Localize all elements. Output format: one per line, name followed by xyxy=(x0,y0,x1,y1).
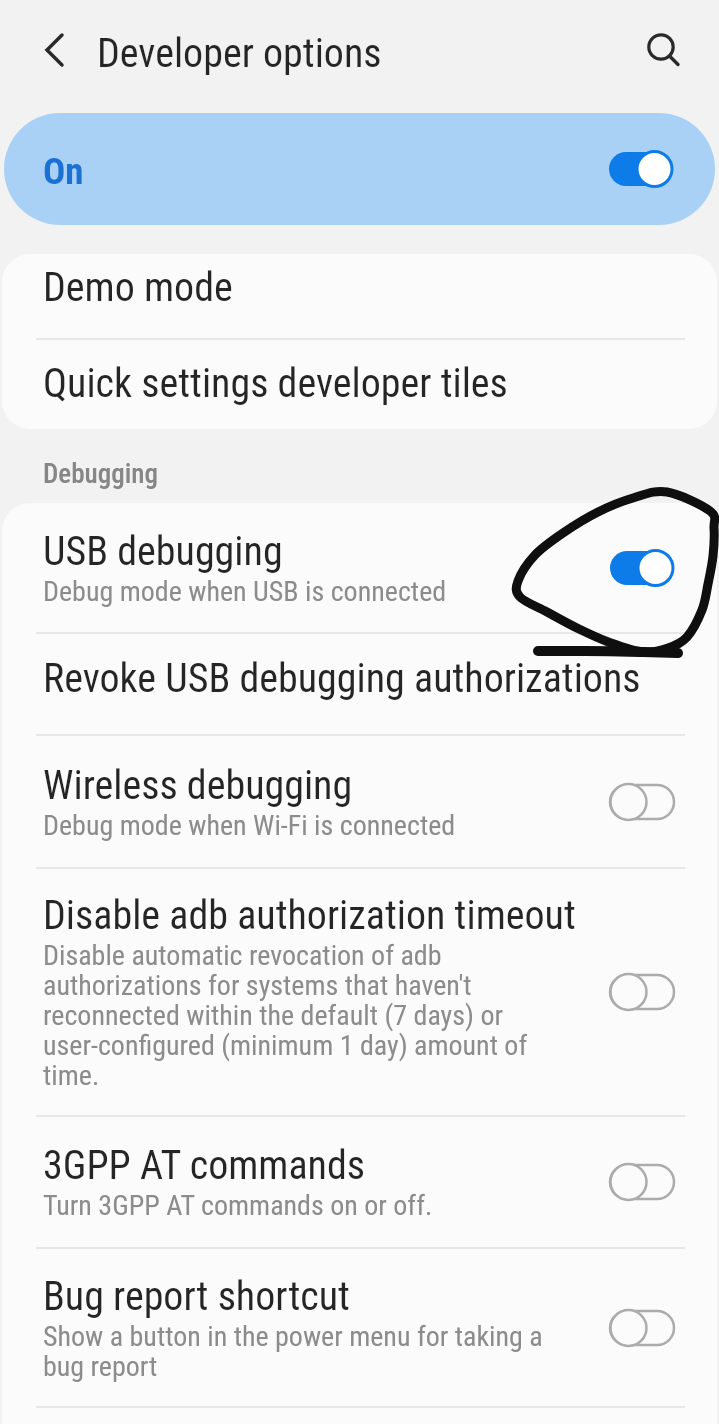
staticText: Quick settings developer tiles xyxy=(43,360,508,407)
button[interactable] xyxy=(0,0,90,97)
staticText: Debugging xyxy=(43,458,158,490)
staticText: Developer options xyxy=(97,30,382,77)
button[interactable]: Bug report shortcut xyxy=(2,1249,717,1406)
staticText: Wireless debugging xyxy=(43,762,353,809)
button[interactable] xyxy=(639,0,719,97)
staticText: Turn 3GPP AT commands on or off. xyxy=(43,1189,433,1222)
staticText: USB debugging xyxy=(43,528,283,575)
button[interactable]: 3GPP AT commands xyxy=(2,1117,717,1247)
button[interactable]: Quick settings developer tiles xyxy=(2,340,717,429)
staticText: On xyxy=(43,150,84,193)
button[interactable] xyxy=(608,149,674,189)
staticText: Disable automatic revocation of adb auth… xyxy=(43,939,528,1092)
staticText: Debug mode when Wi-Fi is connected xyxy=(43,809,456,842)
button[interactable]: Revoke USB debugging authorizations xyxy=(2,634,717,734)
button[interactable] xyxy=(609,972,675,1012)
button[interactable] xyxy=(609,1162,675,1202)
staticText: Demo mode xyxy=(43,264,233,311)
button[interactable]: Wireless debugging xyxy=(2,736,717,867)
button[interactable]: Disable adb authorization timeout xyxy=(2,869,717,1115)
button[interactable]: Demo mode xyxy=(2,254,717,338)
button[interactable] xyxy=(609,782,675,822)
button[interactable]: USB debugging xyxy=(2,503,717,632)
staticText: Disable adb authorization timeout xyxy=(43,892,576,939)
staticText: 3GPP AT commands xyxy=(43,1142,366,1189)
staticText: Debug mode when USB is connected xyxy=(43,575,447,608)
staticText: Revoke USB debugging authorizations xyxy=(43,655,641,702)
button[interactable] xyxy=(609,1308,675,1348)
staticText: Bug report shortcut xyxy=(43,1273,350,1320)
button[interactable] xyxy=(609,548,675,588)
staticText: Show a button in the power menu for taki… xyxy=(43,1320,543,1383)
button[interactable]: On xyxy=(4,113,715,225)
